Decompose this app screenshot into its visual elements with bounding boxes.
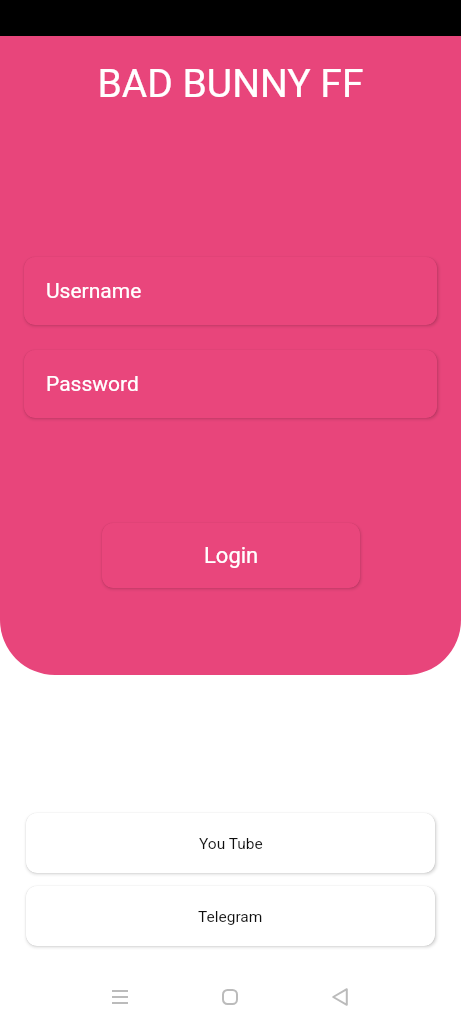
staticText: Telegram <box>198 908 263 926</box>
button[interactable]: Telegram <box>26 886 435 946</box>
staticText: You Tube <box>199 835 263 853</box>
staticText: Password <box>46 372 139 397</box>
button[interactable]: Login <box>102 523 360 588</box>
staticText: Username <box>46 279 142 304</box>
button[interactable]: You Tube <box>26 813 435 873</box>
button[interactable]: Recents <box>96 973 144 1021</box>
button[interactable]: Password <box>24 350 437 418</box>
button[interactable]: Home <box>206 973 254 1021</box>
button[interactable]: Username <box>24 257 437 325</box>
staticText: Login <box>204 543 259 569</box>
staticText: BAD BUNNY FF <box>0 61 461 107</box>
button[interactable]: Back <box>316 973 364 1021</box>
